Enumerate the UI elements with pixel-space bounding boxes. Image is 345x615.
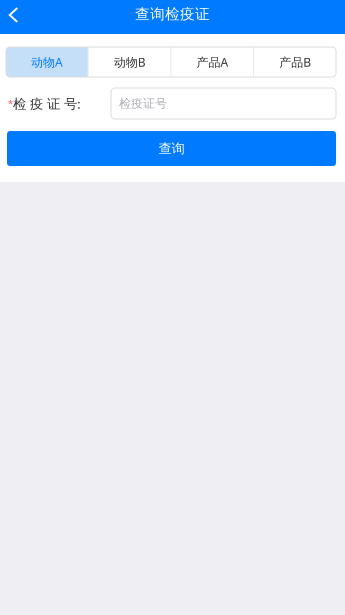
button[interactable]: 动物A <box>6 47 88 77</box>
staticText: 产品A <box>196 54 228 70</box>
staticText: 查询 <box>158 140 184 157</box>
button[interactable]: 产品A <box>171 47 253 77</box>
button[interactable]: Back <box>0 0 27 34</box>
staticText: * <box>8 97 13 110</box>
button[interactable]: 查询 <box>7 131 336 166</box>
staticText: 动物A <box>31 54 63 70</box>
staticText: 查询检疫证 <box>135 5 210 23</box>
button[interactable]: 动物B <box>89 47 171 77</box>
staticText: 检 疫 证 号: <box>13 95 81 112</box>
staticText: 检疫证号 <box>119 96 167 111</box>
staticText: 动物B <box>114 54 146 70</box>
button[interactable]: 产品B <box>254 47 336 77</box>
staticText: 产品B <box>279 54 311 70</box>
